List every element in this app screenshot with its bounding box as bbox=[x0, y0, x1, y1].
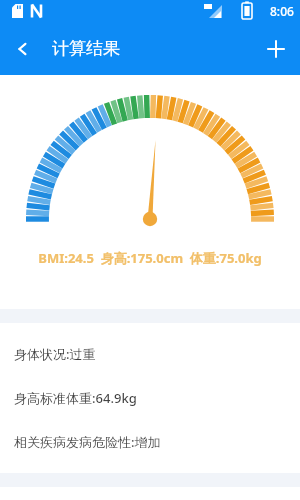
button[interactable]: Add bbox=[252, 22, 300, 75]
staticText: BMI:24.5 身高:175.0cm 体重:75.0kg bbox=[0, 249, 300, 267]
staticText: 身体状况:过重 bbox=[14, 345, 96, 363]
staticText: 身高标准体重:64.9kg bbox=[14, 389, 137, 407]
staticText: 相关疾病发病危险性:增加 bbox=[14, 433, 161, 451]
button[interactable]: 身体状况:过重 bbox=[14, 345, 286, 363]
button[interactable]: Back bbox=[0, 22, 46, 75]
staticText: 8:06 bbox=[270, 3, 294, 19]
button[interactable]: 身高标准体重:64.9kg bbox=[14, 389, 286, 407]
staticText: 计算结果 bbox=[52, 38, 120, 59]
button[interactable]: 相关疾病发病危险性:增加 bbox=[14, 433, 286, 451]
